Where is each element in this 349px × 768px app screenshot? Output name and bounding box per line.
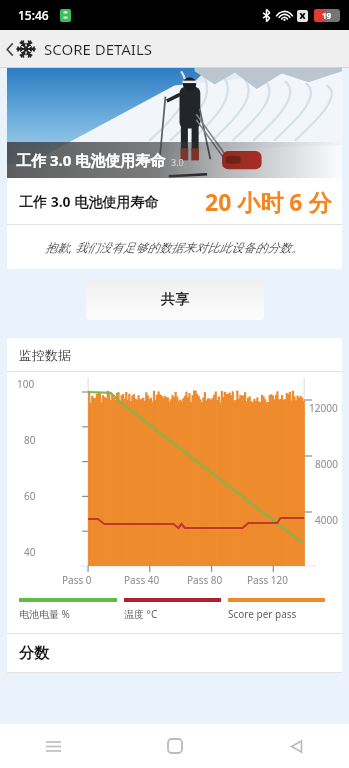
staticText: 60 (24, 489, 36, 503)
staticText: Pass 80 (187, 573, 223, 587)
staticText: 电池电量 % (19, 607, 70, 621)
button[interactable]: Back (0, 30, 349, 68)
button[interactable]: 工作 3.0 电池使用寿命 (7, 178, 342, 224)
button[interactable]: 共享 (86, 280, 264, 320)
button[interactable]: Recent apps (30, 724, 76, 768)
staticText: 8000 (315, 457, 338, 471)
staticText: 20 小时 6 分 (205, 186, 332, 217)
staticText: SCORE DETAILS (44, 39, 153, 59)
staticText: 19 (322, 10, 332, 21)
staticText: 12000 (309, 401, 338, 415)
staticText: 15:46 (18, 7, 49, 23)
staticText: Pass 40 (124, 573, 160, 587)
staticText: 共享 (161, 291, 189, 309)
staticText: 工作 3.0 电池使用寿命 (19, 192, 159, 211)
staticText: Pass 0 (62, 573, 92, 587)
staticText: 工作 3.0 电池使用寿命 (16, 150, 166, 170)
staticText: 分数 (19, 644, 49, 663)
staticText: 温度 °C (124, 607, 158, 621)
button[interactable]: Home (152, 724, 198, 768)
staticText: 100 (17, 377, 35, 391)
staticText: 40 (24, 545, 36, 559)
staticText: 80 (24, 433, 36, 447)
staticText: 抱歉, 我们没有足够的数据来对比此设备的分数。 (45, 239, 304, 255)
staticText: 4000 (315, 513, 338, 527)
staticText: 监控数据 (19, 347, 71, 363)
button[interactable]: Back (273, 724, 319, 768)
staticText: Pass 120 (247, 573, 288, 587)
staticText: Score per pass (228, 607, 297, 621)
other: Back (5, 41, 15, 58)
staticText: 3.0 (171, 156, 184, 168)
